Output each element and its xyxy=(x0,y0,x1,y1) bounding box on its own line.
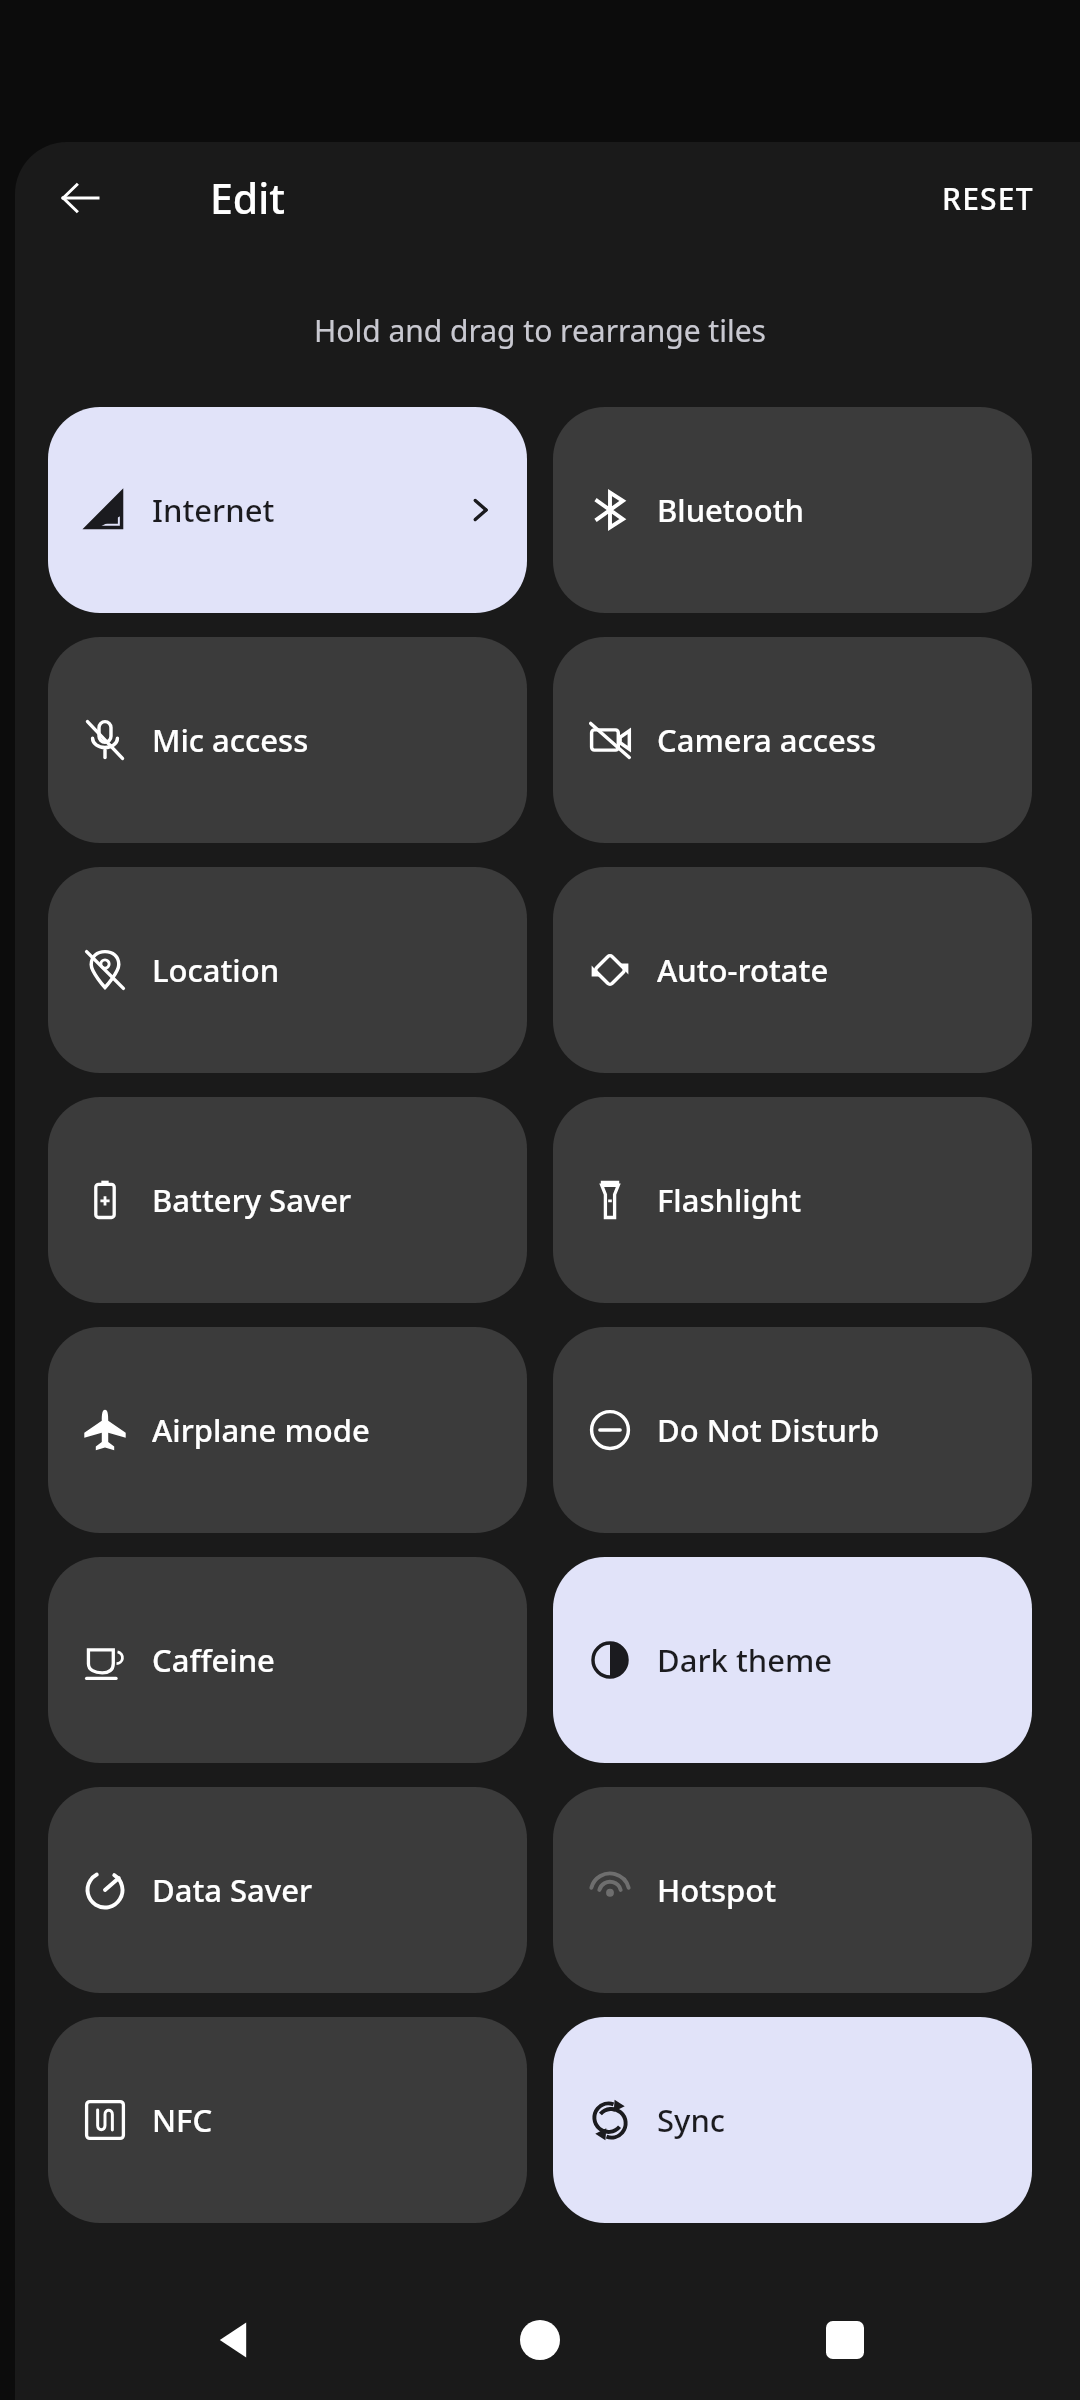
button[interactable]: Caffeine xyxy=(48,1557,527,1763)
staticText: Data Saver xyxy=(152,1869,505,1911)
button[interactable]: Dark theme xyxy=(553,1557,1032,1763)
button[interactable]: Back xyxy=(44,162,116,234)
button[interactable]: Internet xyxy=(48,407,527,613)
button[interactable]: Flashlight xyxy=(553,1097,1032,1303)
staticText: Location xyxy=(152,949,505,991)
button[interactable]: Battery Saver xyxy=(48,1097,527,1303)
staticText: Camera access xyxy=(657,719,1010,761)
staticText: Caffeine xyxy=(152,1639,505,1681)
button[interactable]: Hotspot xyxy=(553,1787,1032,1993)
staticText: Airplane mode xyxy=(152,1409,505,1451)
staticText: Do Not Disturb xyxy=(657,1409,1010,1451)
button[interactable]: Bluetooth xyxy=(553,407,1032,613)
staticText: Flashlight xyxy=(657,1179,1010,1221)
button[interactable]: Sync xyxy=(553,2017,1032,2223)
staticText: Auto-rotate xyxy=(657,949,1010,991)
button[interactable]: Mic access xyxy=(48,637,527,843)
staticText: RESET xyxy=(942,178,1034,219)
staticText: Edit xyxy=(210,170,286,226)
staticText: Internet xyxy=(152,489,463,531)
staticText: NFC xyxy=(152,2099,505,2141)
button[interactable]: Location xyxy=(48,867,527,1073)
button[interactable]: Camera access xyxy=(553,637,1032,843)
staticText: Mic access xyxy=(152,719,505,761)
button[interactable]: Recent apps xyxy=(800,2295,890,2385)
button[interactable]: Back xyxy=(190,2295,280,2385)
button[interactable]: Data Saver xyxy=(48,1787,527,1993)
staticText: Hotspot xyxy=(657,1869,1010,1911)
staticText: Sync xyxy=(657,2099,1010,2141)
button[interactable]: Airplane mode xyxy=(48,1327,527,1533)
button[interactable]: Do Not Disturb xyxy=(553,1327,1032,1533)
button[interactable]: NFC xyxy=(48,2017,527,2223)
staticText: Battery Saver xyxy=(152,1179,505,1221)
staticText: Bluetooth xyxy=(657,489,1010,531)
button[interactable]: RESET xyxy=(926,168,1050,229)
button[interactable]: Auto-rotate xyxy=(553,867,1032,1073)
staticText: Hold and drag to rearrange tiles xyxy=(314,310,766,351)
button[interactable]: Home xyxy=(495,2295,585,2385)
staticText: Dark theme xyxy=(657,1639,1010,1681)
